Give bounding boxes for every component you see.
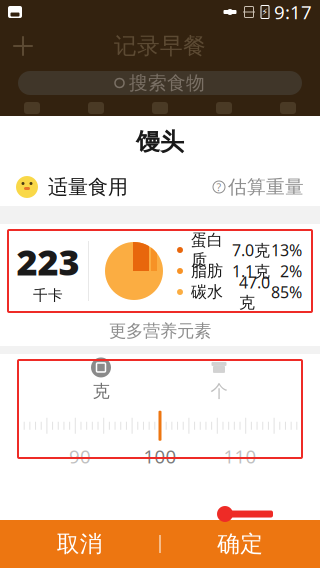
staticText: 馒头 [136, 127, 184, 157]
staticText: 9:17 [274, 0, 312, 24]
button[interactable]: 确定 [160, 520, 320, 568]
staticText: 个 [210, 380, 227, 402]
staticText: 脂肪 [191, 261, 223, 281]
staticText: 估算重量 [228, 175, 304, 198]
staticText: 13% [271, 239, 302, 261]
button[interactable]: 取消 [0, 520, 159, 568]
staticText: 100 [143, 444, 176, 469]
staticText: 适量食用 [48, 175, 128, 199]
staticText: 确定 [217, 530, 263, 558]
staticText: 1.1克 [232, 260, 270, 282]
button[interactable]: 搜索食物 [18, 71, 302, 95]
staticText: 千卡 [33, 286, 63, 304]
staticText: 223 [16, 238, 79, 285]
button[interactable]: ? [213, 172, 304, 202]
staticText: 7.0克 [232, 239, 270, 261]
staticText: 85% [271, 281, 302, 303]
button[interactable]: 关闭 [6, 29, 40, 63]
staticText: ? [216, 180, 221, 194]
staticText: 90 [69, 444, 91, 469]
button[interactable]: 个 [184, 357, 254, 402]
staticText: 碳水 [191, 282, 223, 302]
staticText: ⚡︎ [261, 7, 268, 17]
staticText: 47.0克 [239, 271, 270, 312]
staticText: 更多营养元素 [109, 320, 211, 342]
staticText: 克 [92, 380, 109, 402]
button[interactable]: 克 [66, 357, 136, 402]
button[interactable]: 更多营养元素 [0, 316, 320, 346]
staticText: 2% [280, 260, 302, 282]
staticText: 搜索食物 [129, 71, 205, 94]
staticText: 记录早餐 [114, 32, 206, 60]
staticText: 蛋白质 [191, 230, 223, 270]
staticText: 取消 [57, 530, 103, 558]
staticText: 110 [223, 444, 256, 469]
